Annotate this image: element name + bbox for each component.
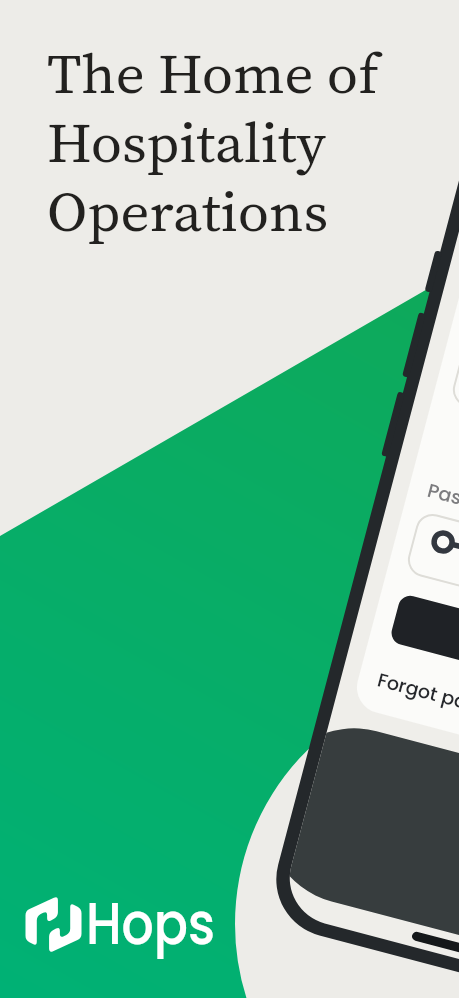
staticText: Forgot password?: [374, 666, 459, 736]
staticText: Hops: [86, 882, 215, 965]
staticText: Password: [424, 477, 459, 527]
staticText: The Home of Hospitality Operations: [47, 35, 379, 250]
